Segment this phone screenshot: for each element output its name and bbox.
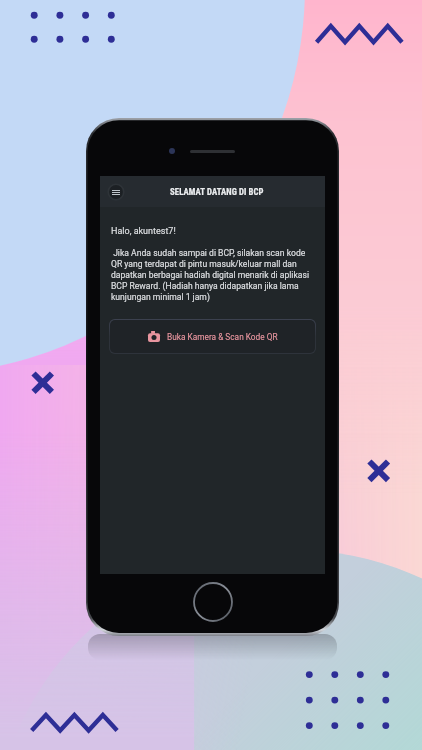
button[interactable]: Buka Kamera & Scan Kode QR	[110, 320, 315, 353]
staticText: Buka Kamera & Scan Kode QR	[167, 332, 278, 342]
staticText: Halo, akuntest7!	[111, 226, 176, 237]
button[interactable]: Menu	[105, 181, 127, 203]
staticText: SELAMAT DATANG DI BCP	[170, 187, 264, 197]
staticText: Jika Anda sudah sampai di BCP, silakan s…	[111, 248, 313, 302]
